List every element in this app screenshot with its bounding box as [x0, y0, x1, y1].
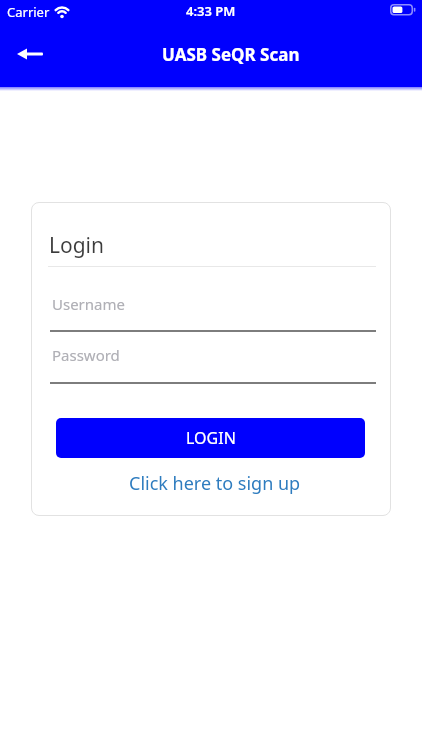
staticText: Click here to sign up [129, 471, 301, 496]
staticText: UASB SeQR Scan [162, 43, 300, 66]
button[interactable]: LOGIN [56, 418, 365, 458]
staticText: Username [52, 294, 125, 314]
staticText: LOGIN [186, 427, 236, 449]
staticText: Password [52, 345, 120, 365]
staticText: 4:33 PM [186, 2, 236, 20]
staticText: Login [49, 231, 105, 260]
button[interactable] [8, 35, 52, 79]
button[interactable]: Click here to sign up [129, 471, 301, 496]
staticText: Carrier [7, 3, 50, 21]
